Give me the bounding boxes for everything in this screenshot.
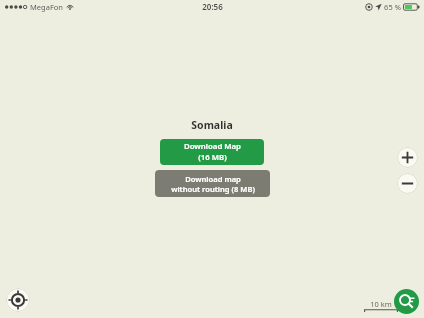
button[interactable]: Download map — [155, 170, 270, 197]
button[interactable]: Zoom in — [397, 147, 418, 168]
button[interactable]: Download Map — [160, 139, 264, 165]
staticText: Download Map — [184, 141, 241, 152]
button[interactable]: Search — [394, 289, 419, 314]
staticText: 20:56 — [202, 1, 223, 12]
staticText: Download map — [185, 174, 241, 184]
staticText: 65 % — [384, 2, 401, 12]
staticText: 10 km — [370, 299, 392, 309]
staticText: MegaFon — [30, 2, 63, 12]
staticText: without routing (8 MB) — [171, 184, 255, 194]
button[interactable]: Zoom out — [397, 173, 418, 194]
staticText: Somalia — [191, 118, 233, 132]
button[interactable]: My location — [6, 288, 30, 312]
staticText: (16 MB) — [198, 152, 227, 163]
